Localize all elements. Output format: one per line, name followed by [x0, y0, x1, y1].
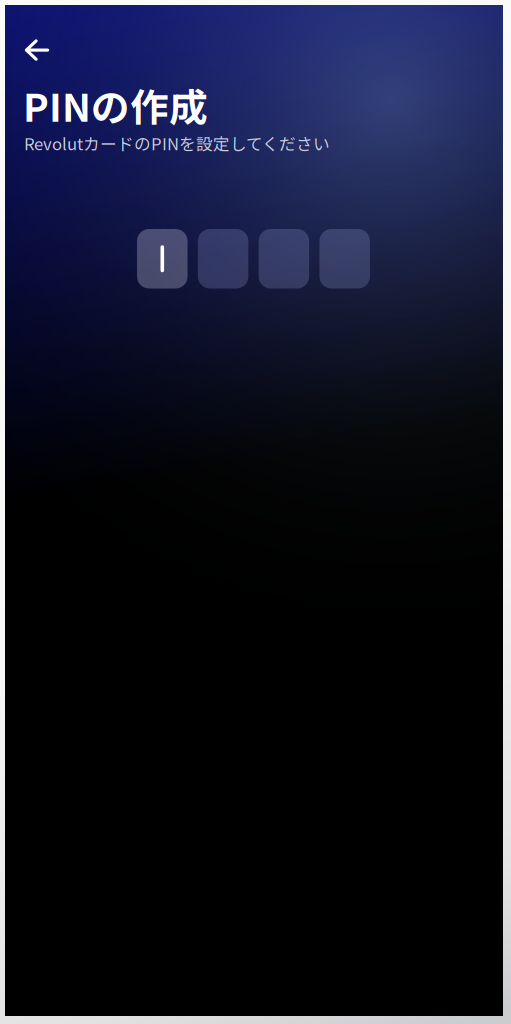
button[interactable]: Back	[15, 28, 59, 72]
staticText: PINの作成	[23, 77, 208, 133]
staticText: RevolutカードのPINを設定してください	[24, 131, 330, 155]
